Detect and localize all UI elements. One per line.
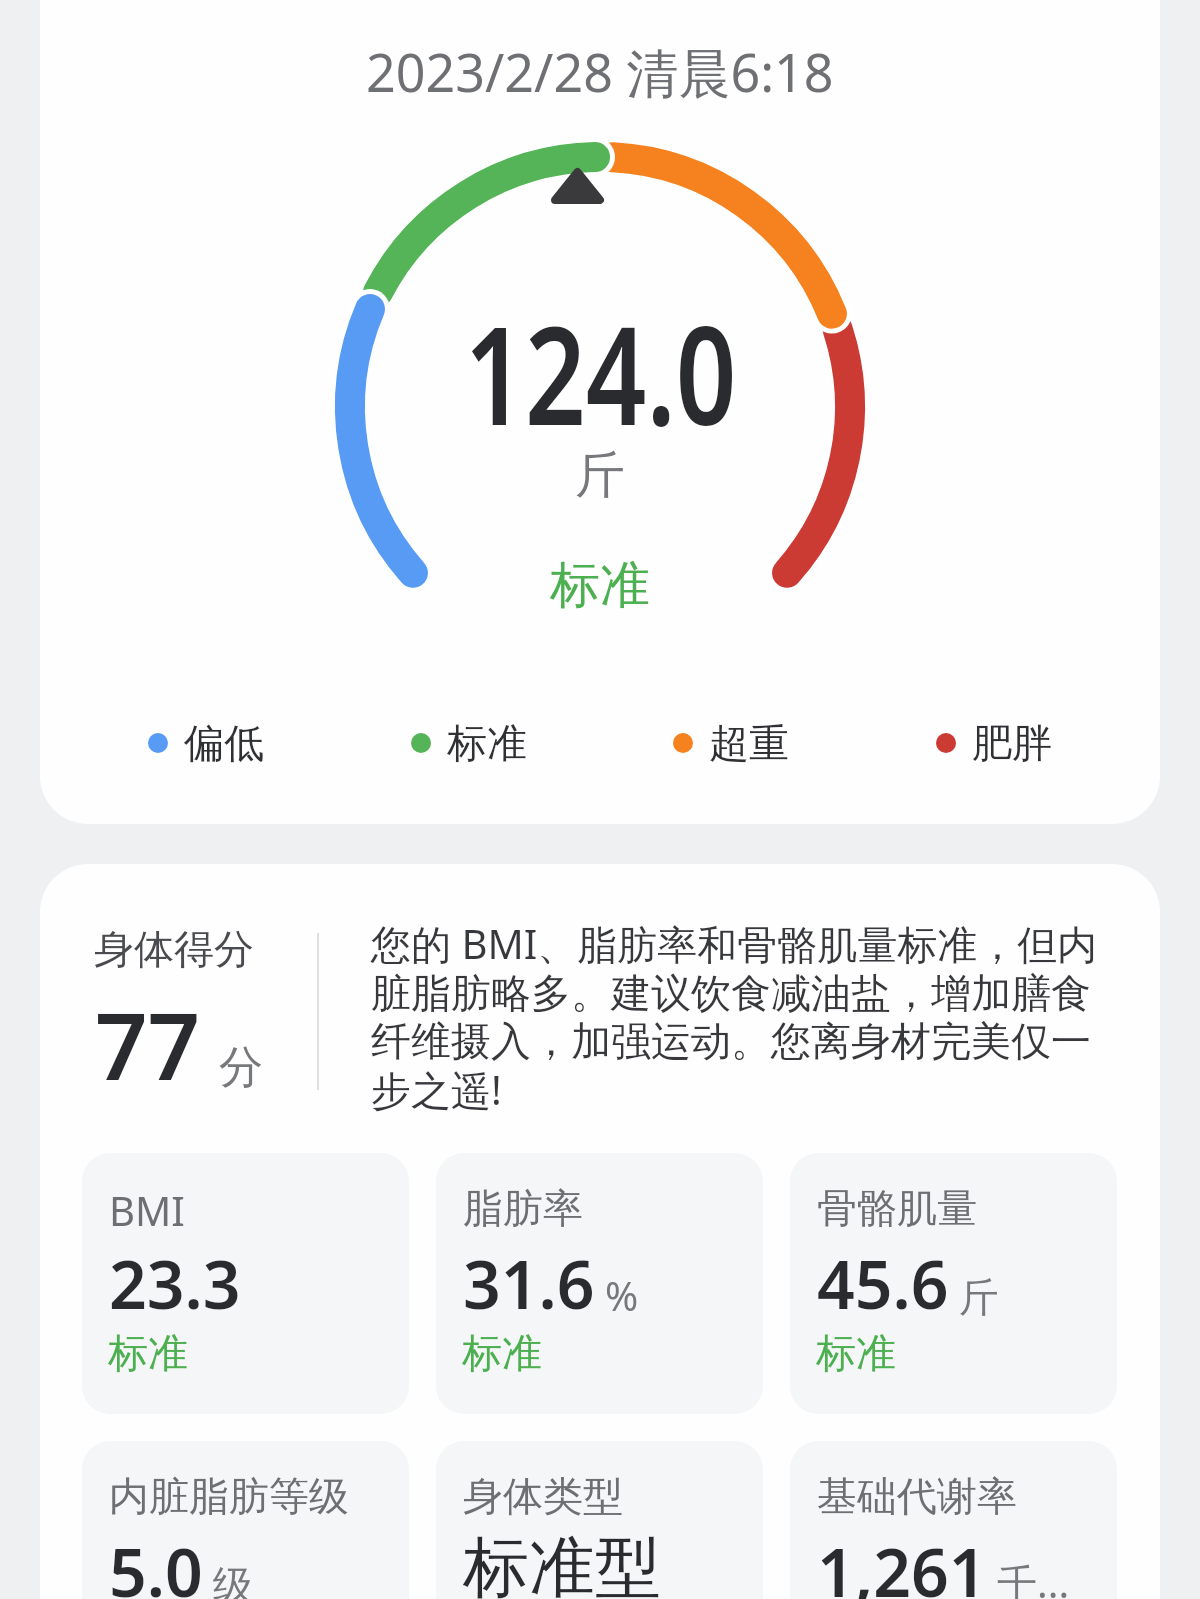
staticText: 骨骼肌量 (817, 1183, 977, 1233)
staticText: % (605, 1268, 639, 1322)
staticText: 45.6 (817, 1238, 949, 1328)
staticText: 标准 (550, 554, 650, 617)
staticText: 偏低 (184, 718, 264, 768)
staticText: 身体得分 (94, 924, 254, 974)
staticText: 千... (997, 1555, 1070, 1599)
button[interactable]: 内脏脂肪等级 (82, 1441, 409, 1599)
staticText: 内脏脂肪等级 (109, 1471, 349, 1521)
staticText: 1,261 (817, 1526, 987, 1599)
staticText: 标准 (108, 1328, 188, 1378)
staticText: 分 (219, 1040, 263, 1095)
button[interactable]: 超重 (673, 718, 789, 768)
staticText: 2023/2/28 清晨6:18 (366, 36, 834, 107)
staticText: 级 (213, 1560, 253, 1599)
staticText: 5.0 (109, 1526, 203, 1599)
staticText: 23.3 (109, 1238, 241, 1328)
staticText: 肥胖 (972, 718, 1052, 768)
button[interactable]: 身体类型 (436, 1441, 763, 1599)
button[interactable]: 脂肪率 (436, 1153, 763, 1414)
staticText: 标准 (462, 1328, 542, 1378)
staticText: 124.0 (464, 280, 737, 465)
staticText: 斤 (575, 444, 625, 507)
button[interactable]: 肥胖 (936, 718, 1052, 768)
staticText: 斤 (959, 1272, 999, 1322)
staticText: 31.6 (463, 1238, 595, 1328)
staticText: 标准型 (463, 1526, 661, 1599)
button[interactable]: BMI (82, 1153, 409, 1414)
button[interactable]: 标准 (411, 718, 527, 768)
staticText: 77 (95, 982, 201, 1107)
staticText: 身体类型 (463, 1471, 623, 1521)
button[interactable]: 骨骼肌量 (790, 1153, 1117, 1414)
staticText: 您的 BMI、脂肪率和骨骼肌量标准，但内 脏脂肪略多。建议饮食减油盐，增加膳食 … (371, 916, 1098, 1117)
staticText: 脂肪率 (463, 1183, 583, 1233)
staticText: 标准 (816, 1328, 896, 1378)
staticText: BMI (109, 1183, 185, 1237)
staticText: 超重 (709, 718, 789, 768)
staticText: 标准 (447, 718, 527, 768)
button[interactable]: 基础代谢率 (790, 1441, 1117, 1599)
staticText: 基础代谢率 (817, 1471, 1017, 1521)
button[interactable]: 偏低 (148, 718, 264, 768)
